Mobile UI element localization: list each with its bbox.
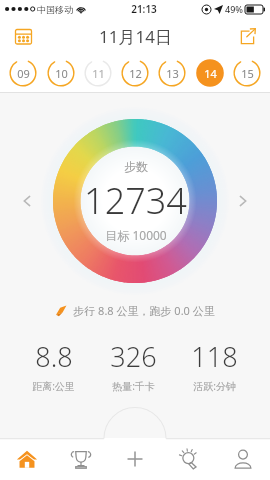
staticText: 326 bbox=[110, 338, 157, 375]
button[interactable]: 326 bbox=[104, 336, 163, 395]
staticText: 15 bbox=[241, 66, 254, 81]
button[interactable]: Add bbox=[108, 438, 162, 480]
staticText: 13 bbox=[166, 66, 179, 81]
button[interactable]: Achievements bbox=[54, 438, 108, 480]
button[interactable]: 14 bbox=[196, 59, 224, 87]
button[interactable]: 8.8 bbox=[26, 336, 81, 395]
staticText: 49% bbox=[225, 3, 243, 15]
button[interactable]: Next day bbox=[230, 188, 256, 214]
staticText: 距离:公里 bbox=[32, 379, 75, 393]
button[interactable]: Calendar bbox=[8, 21, 38, 51]
staticText: 11 bbox=[92, 66, 105, 81]
button[interactable]: 09 bbox=[9, 59, 37, 87]
staticText: 09 bbox=[17, 66, 30, 81]
button[interactable]: 13 bbox=[158, 59, 186, 87]
staticText: 10 bbox=[55, 66, 68, 81]
button[interactable]: 11 bbox=[84, 59, 112, 87]
button[interactable]: 10 bbox=[47, 59, 75, 87]
button[interactable]: 12 bbox=[121, 59, 149, 87]
staticText: 8.8 bbox=[35, 338, 73, 375]
staticText: 21:13 bbox=[131, 2, 157, 16]
button[interactable]: 15 bbox=[233, 59, 261, 87]
staticText: 步数 bbox=[124, 159, 148, 174]
button[interactable]: Discover bbox=[162, 438, 216, 480]
button[interactable]: Share bbox=[232, 21, 262, 51]
staticText: 热量:千卡 bbox=[112, 379, 155, 393]
staticText: 12 bbox=[129, 66, 142, 81]
button[interactable]: Home bbox=[0, 438, 54, 480]
button[interactable]: Previous day bbox=[14, 188, 40, 214]
button[interactable]: 118 bbox=[185, 336, 244, 395]
staticText: 步行 8.8 公里，跑步 0.0 公里 bbox=[73, 303, 215, 318]
staticText: 目标 10000 bbox=[105, 227, 167, 243]
staticText: 活跃:分钟 bbox=[193, 379, 236, 393]
button[interactable]: Profile bbox=[216, 438, 270, 480]
staticText: 118 bbox=[191, 338, 238, 375]
staticText: 12734 bbox=[84, 176, 187, 225]
staticText: 中国移动 bbox=[37, 4, 73, 15]
staticText: 14 bbox=[204, 66, 217, 81]
button[interactable]: 步数 bbox=[53, 119, 217, 283]
staticText: 11月14日 bbox=[99, 25, 172, 48]
